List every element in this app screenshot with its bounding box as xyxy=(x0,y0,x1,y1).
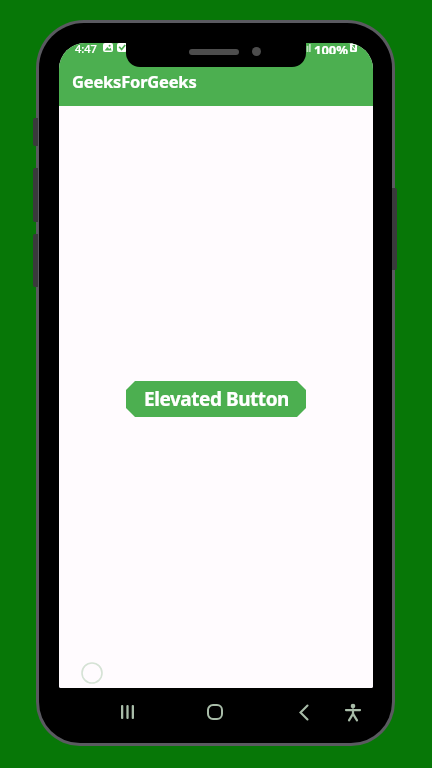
staticText: Elevated Button xyxy=(144,386,289,412)
button[interactable]: Elevated Button xyxy=(126,381,306,417)
button[interactable]: Recent apps xyxy=(112,697,142,727)
staticText: GeeksForGeeks xyxy=(72,70,197,92)
staticText: 4:47 xyxy=(75,43,97,54)
button[interactable]: Back xyxy=(289,697,319,727)
staticText: 100% xyxy=(314,43,349,54)
button[interactable]: Accessibility xyxy=(338,697,368,727)
button[interactable]: Home xyxy=(200,697,230,727)
